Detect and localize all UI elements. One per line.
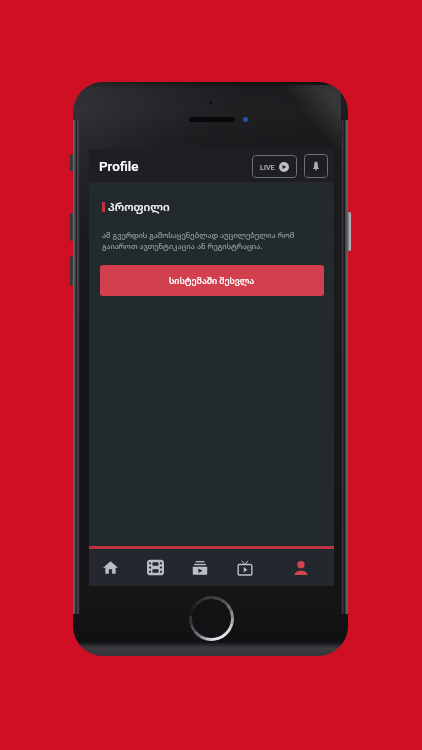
staticText: პროფილი <box>108 199 170 215</box>
button[interactable]: Live TV <box>252 155 297 178</box>
button[interactable]: Notifications <box>304 154 328 178</box>
staticText: Profile <box>99 158 139 174</box>
button[interactable]: Home <box>89 549 131 586</box>
staticText: სისტემაში შესვლა <box>169 275 255 287</box>
button[interactable]: Profile <box>280 549 322 586</box>
button[interactable]: Live TV <box>224 549 266 586</box>
staticText: LIVE <box>260 163 275 171</box>
button[interactable]: სისტემაში შესვლა <box>100 265 324 296</box>
staticText: ამ გვერდის გამოსაყენებლად აუცილებელია რო… <box>102 230 310 251</box>
button[interactable]: Movies <box>134 549 176 586</box>
button[interactable]: Series <box>179 549 221 586</box>
